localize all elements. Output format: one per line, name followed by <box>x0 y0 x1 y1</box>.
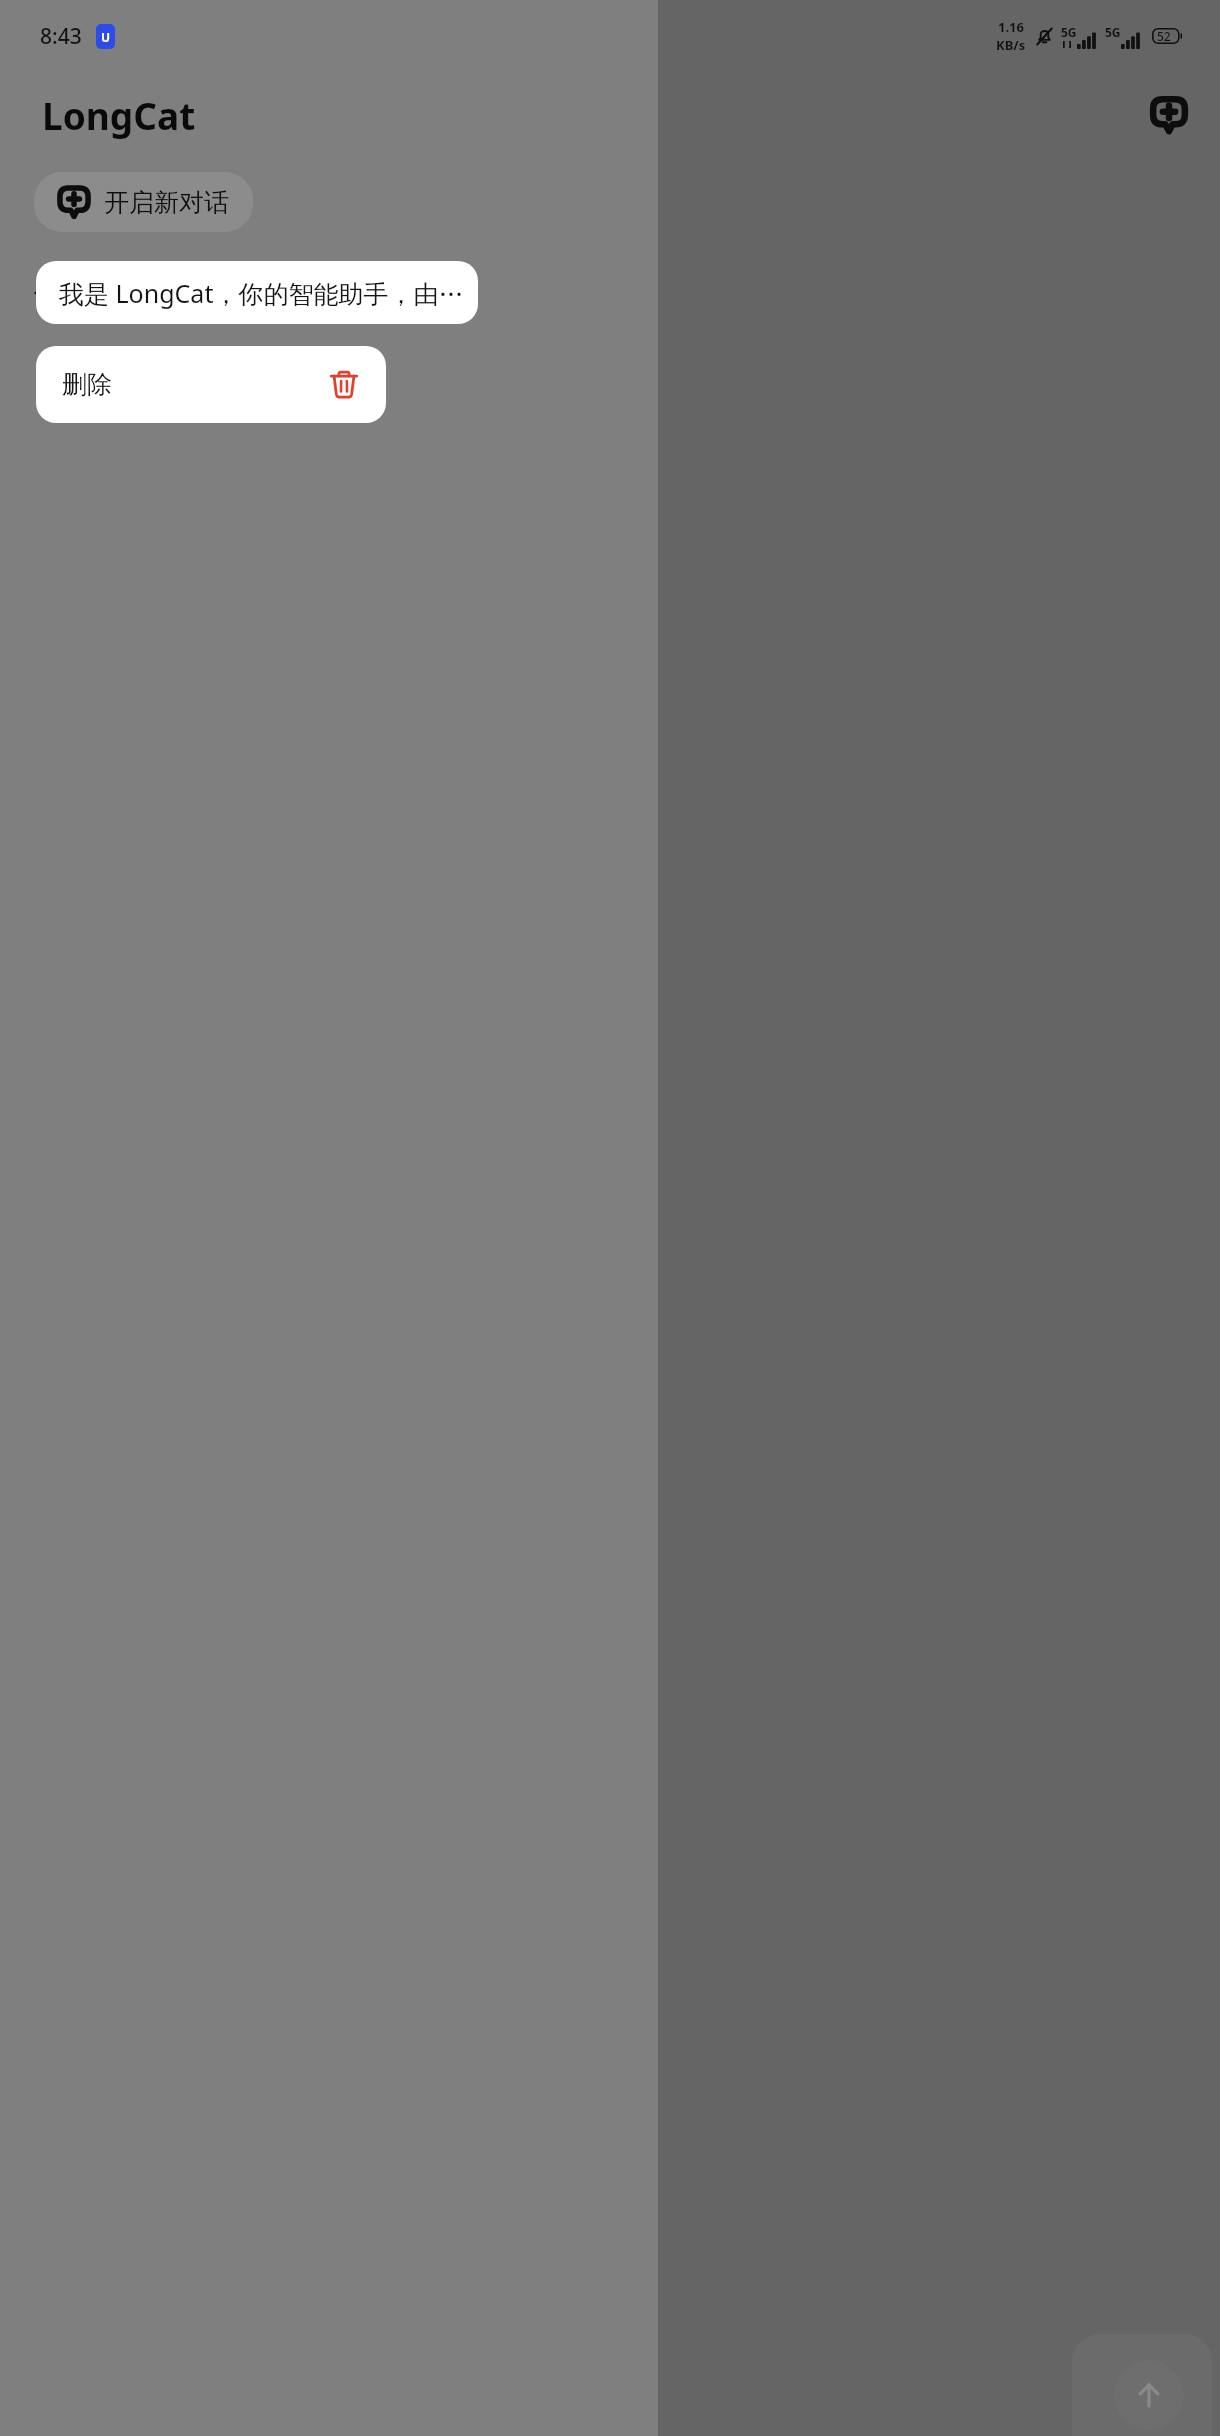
staticText: 5G <box>1061 24 1077 40</box>
staticText: 5G <box>1105 24 1121 40</box>
button[interactable]: 我是 LongCat，你的智能助手，由美... <box>36 261 478 324</box>
staticText: U <box>101 29 111 45</box>
staticText: LongCat <box>42 90 196 140</box>
button[interactable]: 删除 <box>36 346 386 423</box>
staticText: 1.16 <box>998 18 1024 36</box>
button[interactable]: New chat <box>1140 86 1198 144</box>
button[interactable]: 开启新对话 <box>34 172 253 232</box>
staticText: 你好，我是龙猫，我们来聊天吧！ <box>34 278 409 309</box>
staticText: 52 <box>1157 28 1171 44</box>
staticText: 开启新对话 <box>104 187 229 218</box>
staticText: 8:43 <box>40 22 82 51</box>
staticText: 删除 <box>62 369 112 400</box>
staticText: 我是 LongCat，你的智能助手，由美... <box>59 276 466 310</box>
button[interactable]: Send <box>1114 2360 1184 2430</box>
staticText: KB/s <box>996 36 1026 54</box>
